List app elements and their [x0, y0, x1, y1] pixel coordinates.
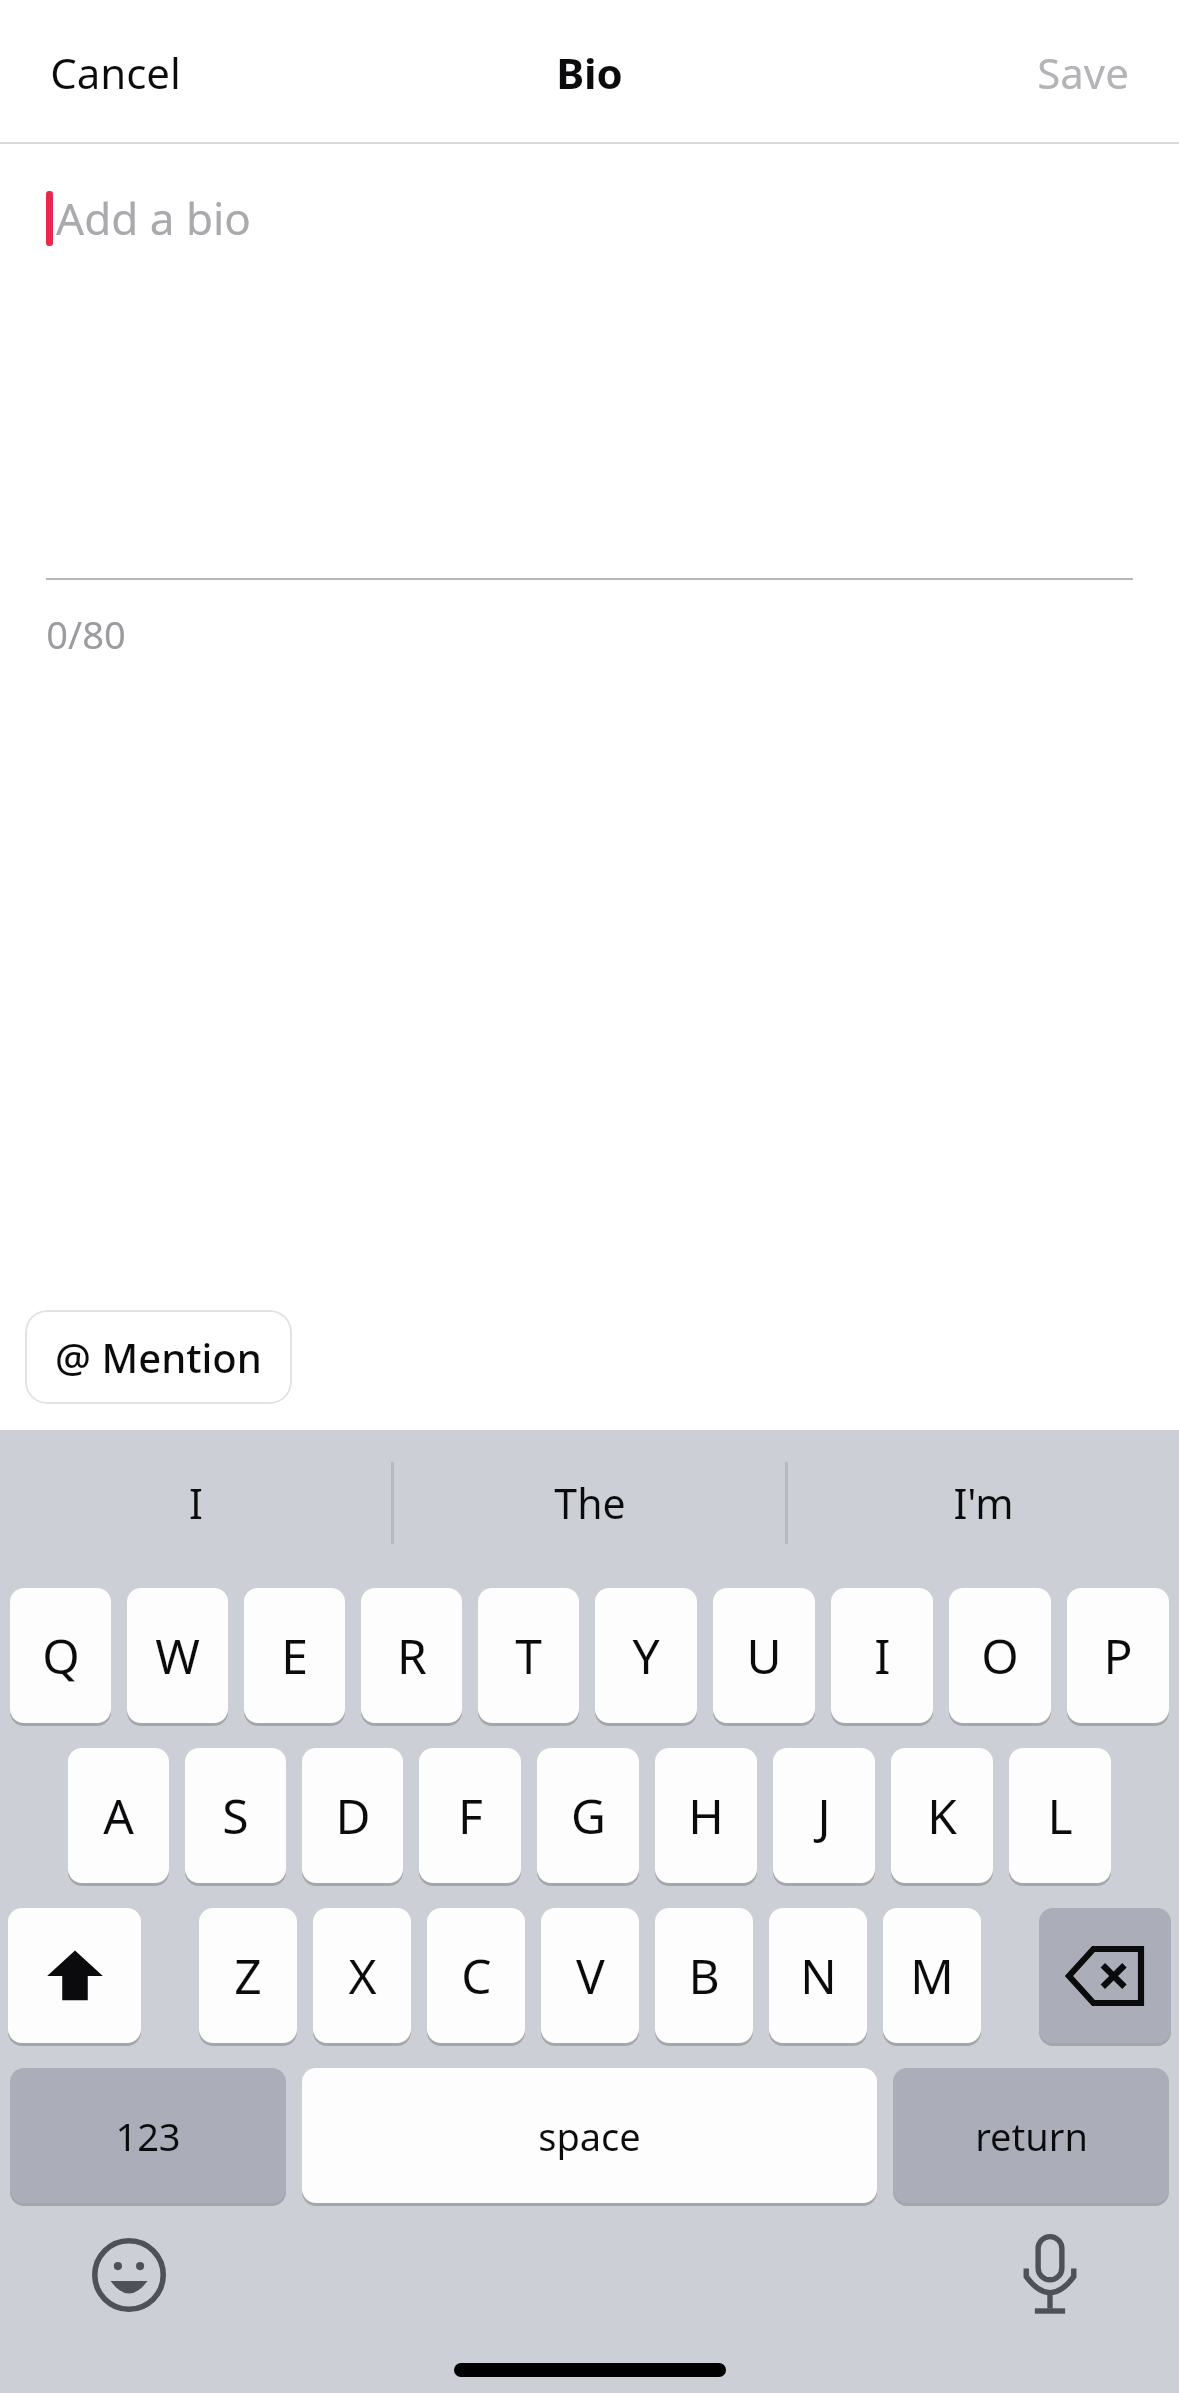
- button[interactable]: F: [419, 1748, 521, 1883]
- staticText: Z: [234, 1943, 262, 2008]
- button[interactable]: A: [68, 1748, 169, 1883]
- staticText: H: [688, 1783, 724, 1848]
- button[interactable]: I: [831, 1588, 933, 1723]
- staticText: D: [335, 1783, 371, 1848]
- button[interactable]: G: [537, 1748, 639, 1883]
- staticText: space: [538, 2110, 641, 2162]
- button[interactable]: The: [394, 1430, 785, 1575]
- button[interactable]: Cancel: [20, 28, 211, 117]
- staticText: J: [817, 1783, 831, 1848]
- button[interactable]: Z: [199, 1908, 297, 2043]
- staticText: I: [189, 1475, 203, 1531]
- button[interactable]: Emoji: [85, 2231, 173, 2319]
- staticText: return: [975, 2110, 1088, 2162]
- button[interactable]: @ Mention: [25, 1310, 292, 1404]
- staticText: Add a bio: [56, 188, 251, 248]
- staticText: Bio: [556, 44, 623, 101]
- staticText: S: [222, 1783, 249, 1848]
- button[interactable]: I: [0, 1430, 391, 1575]
- staticText: B: [688, 1943, 720, 2008]
- button[interactable]: O: [949, 1588, 1051, 1723]
- staticText: V: [576, 1943, 605, 2008]
- staticText: C: [461, 1943, 492, 2008]
- staticText: P: [1103, 1623, 1133, 1688]
- button[interactable]: P: [1067, 1588, 1169, 1723]
- button[interactable]: N: [769, 1908, 867, 2043]
- staticText: Q: [42, 1623, 80, 1688]
- staticText: E: [281, 1623, 308, 1688]
- staticText: X: [348, 1943, 377, 2008]
- button[interactable]: E: [244, 1588, 345, 1723]
- staticText: @ Mention: [55, 1330, 262, 1384]
- button[interactable]: T: [478, 1588, 579, 1723]
- button[interactable]: Add a bio: [0, 144, 1179, 578]
- button[interactable]: Dictation: [1006, 2231, 1094, 2319]
- button[interactable]: return: [893, 2068, 1169, 2203]
- staticText: N: [800, 1943, 837, 2008]
- staticText: Cancel: [50, 44, 181, 101]
- staticText: O: [981, 1623, 1019, 1688]
- button[interactable]: K: [891, 1748, 993, 1883]
- button[interactable]: space: [302, 2068, 877, 2203]
- staticText: Y: [632, 1623, 660, 1688]
- button[interactable]: H: [655, 1748, 757, 1883]
- staticText: U: [746, 1623, 782, 1688]
- button[interactable]: R: [361, 1588, 462, 1723]
- staticText: I: [874, 1623, 891, 1688]
- button[interactable]: V: [541, 1908, 639, 2043]
- button[interactable]: Backspace: [1039, 1908, 1171, 2043]
- staticText: K: [927, 1783, 957, 1848]
- staticText: The: [554, 1475, 626, 1531]
- button[interactable]: Q: [10, 1588, 111, 1723]
- staticText: M: [910, 1943, 954, 2008]
- staticText: G: [571, 1783, 606, 1848]
- button[interactable]: 123: [10, 2068, 286, 2203]
- button[interactable]: Shift: [8, 1908, 141, 2043]
- button[interactable]: Y: [595, 1588, 697, 1723]
- button[interactable]: J: [773, 1748, 875, 1883]
- button[interactable]: B: [655, 1908, 753, 2043]
- button[interactable]: M: [883, 1908, 981, 2043]
- staticText: 0/80: [46, 608, 126, 660]
- button[interactable]: W: [127, 1588, 228, 1723]
- staticText: T: [515, 1623, 542, 1688]
- button[interactable]: X: [313, 1908, 411, 2043]
- button[interactable]: S: [185, 1748, 286, 1883]
- staticText: W: [155, 1623, 200, 1688]
- staticText: L: [1047, 1783, 1073, 1848]
- button[interactable]: U: [713, 1588, 815, 1723]
- staticText: R: [397, 1623, 427, 1688]
- staticText: I'm: [953, 1475, 1014, 1531]
- staticText: 123: [115, 2110, 181, 2162]
- button[interactable]: C: [427, 1908, 525, 2043]
- button[interactable]: I'm: [788, 1430, 1179, 1575]
- button[interactable]: Save: [1007, 28, 1159, 117]
- button[interactable]: D: [302, 1748, 403, 1883]
- button[interactable]: L: [1009, 1748, 1111, 1883]
- staticText: F: [458, 1783, 483, 1848]
- staticText: A: [103, 1783, 134, 1848]
- staticText: Save: [1037, 44, 1129, 101]
